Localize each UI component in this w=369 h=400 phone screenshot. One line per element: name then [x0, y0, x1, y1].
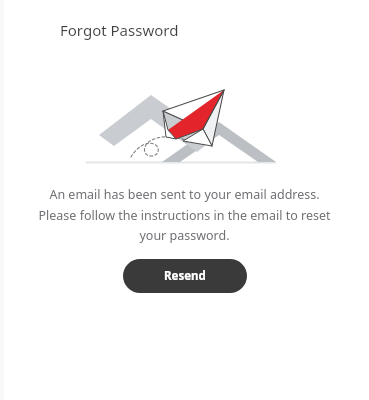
staticText: Forgot Password [60, 20, 179, 40]
staticText: Resend [164, 268, 206, 284]
button[interactable]: Resend [123, 259, 247, 293]
other: Email sent illustration [0, 78, 369, 168]
staticText: An email has been sent to your email add… [28, 186, 341, 243]
